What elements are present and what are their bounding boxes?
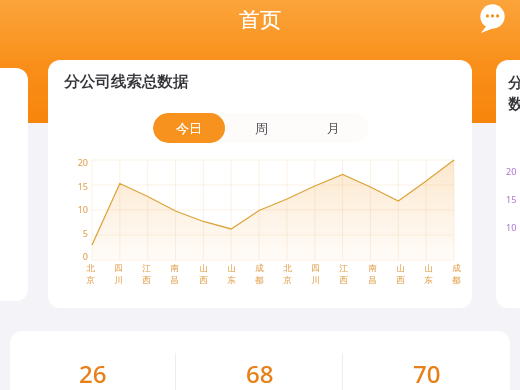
staticText: 山 [199,263,208,274]
staticText: 70 [413,357,441,390]
staticText: 首页 [239,7,281,33]
staticText: 山 [424,263,433,274]
staticText: 周 [255,120,268,136]
button[interactable]: Messages [478,3,507,32]
staticText: 江 [339,263,348,274]
staticText: 月 [327,120,340,136]
staticText: 川 [311,275,320,286]
staticText: 15 [66,180,88,192]
staticText: 分公司线索总数据 [64,72,188,92]
staticText: 南 [170,263,179,274]
staticText: 26 [79,357,107,390]
staticText: 西 [142,275,151,286]
staticText: 西 [199,275,208,286]
staticText: 东 [424,275,433,286]
staticText: 山 [396,263,405,274]
button[interactable]: 月 [297,113,369,143]
staticText: 10 [66,203,88,215]
staticText: 分公司线索总数据 [508,74,520,114]
staticText: 南 [368,263,377,274]
staticText: 昌 [368,275,377,286]
staticText: 20 [66,156,88,168]
button[interactable]: 68 [176,331,343,390]
staticText: 0 [66,250,88,262]
staticText: 西 [339,275,348,286]
staticText: 北 [86,263,95,274]
staticText: 江 [142,263,151,274]
staticText: 20 [506,165,517,177]
staticText: 四 [311,263,320,274]
staticText: 都 [452,275,461,286]
button[interactable]: 分公司线索总数据 [496,60,520,308]
staticText: 东 [227,275,236,286]
staticText: 京 [283,275,292,286]
staticText: 西 [396,275,405,286]
staticText: 68 [246,357,274,390]
button[interactable]: 70 [343,331,510,390]
staticText: 15 [506,193,517,205]
staticText: 北 [283,263,292,274]
staticText: 成 [452,263,461,274]
staticText: 今日 [176,120,202,136]
button[interactable]: 分公司线索总数据 [48,60,472,308]
staticText: 四 [114,263,123,274]
staticText: 都 [255,275,264,286]
staticText: 成 [255,263,264,274]
staticText: 川 [114,275,123,286]
button[interactable] [0,68,28,301]
staticText: 山 [227,263,236,274]
button[interactable]: 今日 [153,113,225,143]
staticText: 5 [66,227,88,239]
staticText: 昌 [170,275,179,286]
button[interactable]: 26 [10,331,176,390]
staticText: 京 [86,275,95,286]
button[interactable]: 周 [225,113,297,143]
staticText: 10 [506,221,517,233]
